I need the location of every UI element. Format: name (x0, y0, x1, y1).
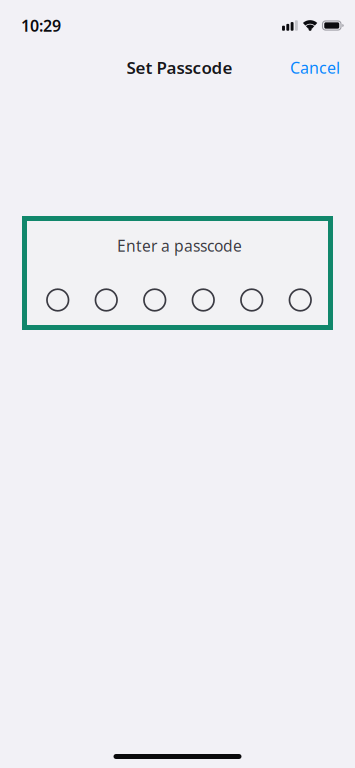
staticText: 10:29 (21, 15, 61, 36)
staticText: Cancel (290, 57, 340, 78)
button[interactable]: Enter a passcode (22, 216, 333, 330)
button[interactable]: Cancel (275, 49, 355, 85)
staticText: Enter a passcode (117, 235, 242, 256)
staticText: Set Passcode (126, 56, 232, 79)
